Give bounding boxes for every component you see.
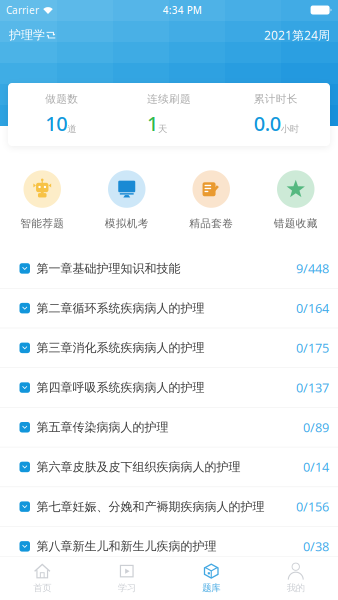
- button[interactable]: 题库: [169, 556, 253, 600]
- staticText: 0/175: [296, 339, 329, 356]
- staticText: 累计时长: [254, 92, 298, 106]
- button[interactable]: 精品套卷: [169, 172, 253, 229]
- button[interactable]: 第八章新生儿和新生儿疾病的护理: [0, 527, 338, 566]
- staticText: 首页: [33, 582, 51, 594]
- staticText: 9/448: [296, 260, 329, 277]
- staticText: 连续刷题: [147, 92, 191, 106]
- button[interactable]: 第一章基础护理知识和技能: [0, 249, 338, 289]
- staticText: 0/14: [303, 458, 329, 476]
- staticText: 第二章循环系统疾病病人的护理: [36, 301, 204, 316]
- button[interactable]: 第三章消化系统疾病病人的护理: [0, 328, 338, 368]
- staticText: 第八章新生儿和新生儿疾病的护理: [36, 539, 216, 554]
- button[interactable]: 第六章皮肤及皮下组织疾病病人的护理: [0, 447, 338, 487]
- button[interactable]: 模拟机考: [84, 172, 169, 229]
- staticText: 小时: [281, 123, 299, 135]
- button[interactable]: 第五章传染病病人的护理: [0, 408, 338, 447]
- button[interactable]: 首页: [0, 556, 84, 600]
- staticText: 做题数: [45, 92, 78, 106]
- staticText: 第六章皮肤及皮下组织疾病病人的护理: [36, 459, 240, 474]
- staticText: 4:34 PM: [163, 3, 202, 17]
- button[interactable]: 护理学: [9, 23, 55, 47]
- staticText: 我的: [287, 582, 305, 594]
- button[interactable]: 智能荐题: [0, 172, 84, 229]
- staticText: 0/156: [296, 498, 329, 515]
- button[interactable]: 第七章妊娠、分娩和产褥期疾病病人的护理: [0, 487, 338, 527]
- staticText: 1: [147, 110, 158, 137]
- staticText: 第五章传染病病人的护理: [36, 420, 168, 435]
- staticText: 第一章基础护理知识和技能: [36, 261, 180, 276]
- staticText: 第三章消化系统疾病病人的护理: [36, 340, 204, 355]
- button[interactable]: 2021第24周: [264, 23, 330, 47]
- staticText: 学习: [118, 582, 136, 594]
- button[interactable]: 错题收藏: [253, 172, 338, 229]
- staticText: 护理学: [9, 27, 45, 42]
- staticText: Carrier: [6, 3, 39, 17]
- staticText: 第四章呼吸系统疾病病人的护理: [36, 380, 204, 395]
- staticText: 天: [158, 123, 167, 135]
- staticText: 0/38: [303, 538, 329, 555]
- staticText: 0/164: [296, 299, 329, 317]
- staticText: 第七章妊娠、分娩和产褥期疾病病人的护理: [36, 499, 264, 514]
- button[interactable]: 我的: [253, 556, 338, 600]
- staticText: 智能荐题: [20, 217, 64, 230]
- staticText: 10: [45, 110, 67, 137]
- staticText: 2021第24周: [264, 27, 330, 43]
- staticText: 精品套卷: [189, 217, 233, 230]
- staticText: 道: [67, 123, 76, 135]
- staticText: 题库: [202, 582, 220, 594]
- staticText: 0/89: [303, 419, 329, 436]
- button[interactable]: 第四章呼吸系统疾病病人的护理: [0, 368, 338, 408]
- staticText: 模拟机考: [105, 217, 149, 230]
- staticText: 错题收藏: [274, 217, 318, 230]
- button[interactable]: 学习: [84, 556, 169, 600]
- button[interactable]: 第二章循环系统疾病病人的护理: [0, 289, 338, 328]
- staticText: 0.0: [254, 110, 281, 137]
- staticText: 0/137: [296, 379, 329, 396]
